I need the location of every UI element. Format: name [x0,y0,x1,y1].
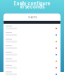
button[interactable] [5,65,58,71]
button[interactable] [5,45,58,52]
staticText: Inserts [27,16,36,19]
button[interactable] [5,71,58,78]
button[interactable] [5,58,58,65]
button[interactable] [5,26,58,32]
button[interactable] [5,32,58,39]
staticText: Easily configure [13,1,50,6]
staticText: in seconds [20,4,44,9]
button[interactable] [5,39,58,45]
button[interactable] [5,52,58,58]
